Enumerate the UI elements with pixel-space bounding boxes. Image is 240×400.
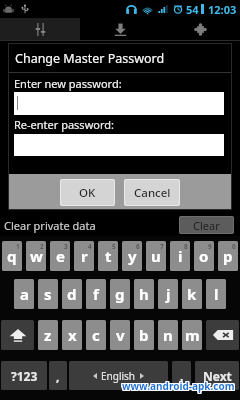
button[interactable]: i (170, 241, 190, 271)
button[interactable]: Shift (1, 320, 34, 350)
staticText: b (139, 325, 149, 345)
button[interactable]: n (158, 320, 178, 350)
staticText: h (139, 284, 149, 304)
staticText: 1 (16, 242, 20, 251)
staticText: a (20, 284, 29, 304)
button[interactable]: p (218, 241, 238, 271)
button[interactable]: Clear (179, 216, 234, 234)
button[interactable]: l (206, 279, 226, 309)
staticText: English (101, 369, 136, 383)
staticText: l (214, 284, 219, 304)
staticText: www.android-apk.com (122, 378, 235, 392)
button[interactable]: x (62, 320, 82, 350)
button[interactable]: o (194, 241, 214, 271)
button[interactable]: f (86, 279, 106, 309)
staticText: www.android-apk.com (121, 378, 234, 392)
staticText: s (44, 284, 52, 304)
button[interactable]: Backspace (206, 320, 239, 350)
staticText: www.android-apk.com (122, 379, 235, 393)
button[interactable]: h (134, 279, 154, 309)
staticText: f (93, 284, 99, 304)
staticText: www.android-apk.com (123, 380, 236, 394)
button[interactable]: Downloads tab (80, 18, 160, 40)
button[interactable]: b (134, 320, 154, 350)
button[interactable]: OK (60, 179, 115, 206)
staticText: w (30, 246, 43, 266)
staticText: 6 (136, 242, 140, 251)
staticText: 8 (184, 242, 188, 251)
button[interactable]: r (74, 241, 94, 271)
staticText: Cancel (134, 185, 171, 201)
staticText: www.android-apk.com (123, 379, 236, 393)
button[interactable]: c (86, 320, 106, 350)
staticText: 4 (88, 242, 92, 251)
staticText: r (81, 246, 88, 266)
staticText: n (163, 325, 173, 345)
button[interactable]: z (38, 320, 58, 350)
staticText: 12:03 (208, 2, 237, 17)
staticText: www.android-apk.com (122, 380, 235, 394)
staticText: i (178, 246, 183, 266)
staticText: www.android-apk.com (121, 380, 234, 394)
button[interactable]: Cancel (124, 179, 180, 206)
staticText: d (67, 284, 77, 304)
staticText: y (128, 246, 137, 266)
staticText: o (199, 246, 209, 266)
button[interactable]: ?123 (1, 361, 47, 390)
staticText: m (185, 325, 200, 345)
staticText: 5 (112, 242, 116, 251)
button[interactable]: e (50, 241, 70, 271)
button[interactable]: a (14, 279, 34, 309)
staticText: . (180, 368, 184, 384)
staticText: 2 (40, 242, 44, 251)
button[interactable]: k (182, 279, 202, 309)
button[interactable]: m (182, 320, 202, 350)
staticText: j (166, 284, 171, 304)
button[interactable]: s (38, 279, 58, 309)
staticText: u (151, 246, 161, 266)
staticText: 9 (208, 242, 212, 251)
staticText: z (44, 325, 52, 345)
staticText: ?123 (11, 368, 38, 384)
staticText: Clear private data (4, 218, 96, 233)
staticText: k (187, 284, 197, 304)
staticText: g (115, 284, 125, 304)
button[interactable]: g (110, 279, 130, 309)
button[interactable]: j (158, 279, 178, 309)
staticText: www.android-apk.com (121, 379, 234, 393)
button[interactable]: , (49, 361, 67, 390)
staticText: v (116, 325, 125, 345)
staticText: Next (203, 368, 232, 384)
button[interactable]: u (146, 241, 166, 271)
button[interactable]: . (172, 361, 191, 390)
staticText: , (56, 368, 60, 384)
staticText: OK (79, 185, 96, 201)
staticText: Clear (193, 218, 220, 233)
button[interactable]: y (122, 241, 142, 271)
staticText: Change Master Password (15, 50, 165, 67)
staticText: 3 (64, 242, 68, 251)
button[interactable]: d (62, 279, 82, 309)
staticText: c (92, 325, 100, 345)
staticText: Enter new password: (14, 76, 122, 91)
button[interactable]: t (98, 241, 118, 271)
button[interactable]: w (26, 241, 46, 271)
staticText: www.android-apk.com (123, 378, 236, 392)
button[interactable]: v (110, 320, 130, 350)
button[interactable]: Add-ons tab (160, 18, 240, 40)
button[interactable] (14, 92, 224, 115)
staticText: 0 (232, 242, 236, 251)
button[interactable]: Space (69, 361, 168, 390)
staticText: x (68, 325, 77, 345)
button[interactable]: q (2, 241, 22, 271)
staticText: 54 (186, 2, 199, 17)
staticText: Re-enter password: (14, 117, 114, 132)
staticText: p (223, 246, 233, 266)
staticText: e (56, 246, 65, 266)
button[interactable]: Settings tab (0, 18, 80, 40)
staticText: t (105, 246, 112, 266)
staticText: q (7, 246, 17, 266)
button[interactable]: Next (195, 361, 239, 390)
staticText: 7 (160, 242, 164, 251)
